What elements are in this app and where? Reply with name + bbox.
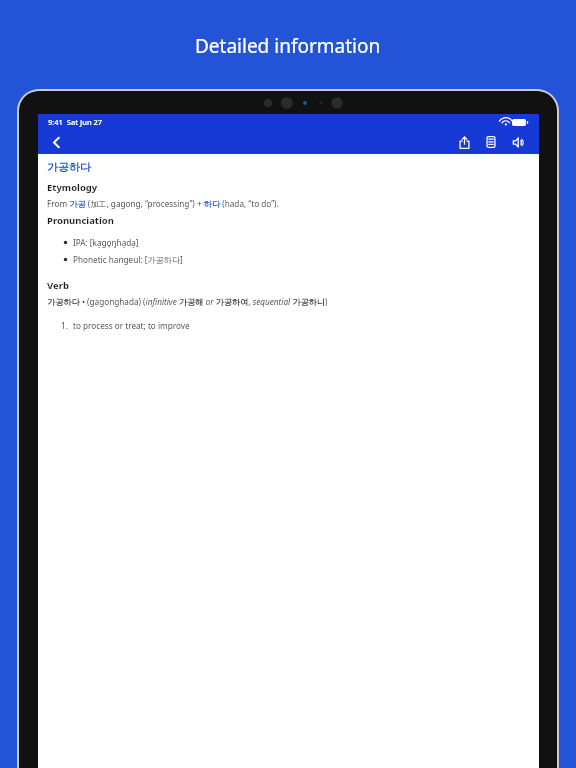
staticText: Detailed information xyxy=(195,33,381,59)
staticText: Verb xyxy=(47,279,69,292)
staticText: 가공하다 • (gagonghada) (infinitive 가공해 or 가… xyxy=(47,296,328,307)
button[interactable]: Pronounce xyxy=(508,132,528,152)
button[interactable]: Back xyxy=(45,131,67,153)
button[interactable]: Table of contents xyxy=(481,132,501,152)
staticText: Pronunciation xyxy=(47,214,114,227)
button[interactable]: Share xyxy=(454,132,474,152)
staticText: 가공하다 xyxy=(47,160,91,174)
staticText: 9:41 Sat Jun 27 xyxy=(48,117,103,127)
staticText: Phonetic hangeul: [가공하다] xyxy=(73,254,183,265)
staticText: 1. xyxy=(61,320,68,331)
staticText: Etymology xyxy=(47,181,98,194)
staticText: From 가공 (加工, gagong, “processing”) + 하다 … xyxy=(47,198,279,209)
staticText: to process or treat; to improve xyxy=(73,320,190,331)
staticText: IPA: [ka̠ɡo̞ŋɦa̠da̠] xyxy=(73,237,139,248)
